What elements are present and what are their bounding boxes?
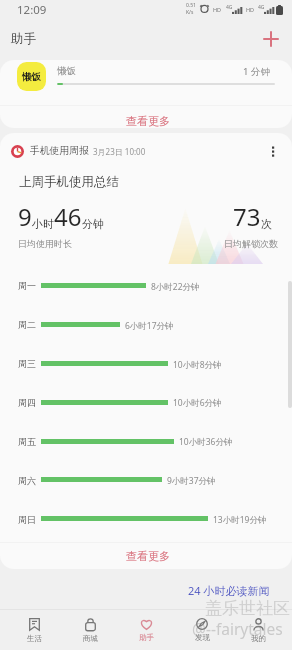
staticText: 12:09 — [17, 2, 47, 18]
staticText: 46 — [54, 200, 82, 233]
staticText: 周日 — [18, 514, 36, 525]
button[interactable]: 生活 — [6, 610, 62, 650]
staticText: 助手 — [139, 633, 154, 642]
staticText: 10小时8分钟 — [173, 359, 222, 371]
staticText: 10小时6分钟 — [173, 397, 222, 409]
button[interactable]: 助手 — [118, 610, 174, 650]
staticText: 助手 — [11, 31, 36, 47]
staticText: 懒饭 — [57, 65, 76, 77]
staticText: 查看更多 — [126, 549, 170, 563]
staticText: 我的 — [251, 634, 266, 643]
staticText: 4G — [226, 4, 233, 11]
staticText: 商城 — [83, 634, 98, 643]
staticText: 4G — [258, 4, 265, 11]
staticText: 小时 — [32, 217, 54, 231]
staticText: 手机使用周报 — [30, 145, 89, 157]
staticText: 次 — [261, 217, 272, 231]
button[interactable]: 商城 — [62, 610, 118, 650]
staticText: 24 小时必读新闻 — [188, 583, 270, 598]
staticText: 周四 — [18, 397, 36, 408]
staticText: 懒饭 — [22, 71, 41, 83]
staticText: HD — [213, 6, 222, 13]
staticText: 73 — [233, 200, 261, 233]
staticText: @--fairytales — [192, 618, 283, 639]
button[interactable]: 我的 — [230, 610, 286, 650]
button[interactable]: 查看更多 — [0, 105, 292, 128]
staticText: 10小时36分钟 — [179, 436, 233, 448]
staticText: 日均使用时长 — [18, 238, 72, 249]
staticText: 周二 — [18, 319, 36, 330]
staticText: 查看更多 — [126, 114, 170, 128]
button[interactable]: Add — [259, 27, 283, 51]
staticText: 发现 — [195, 633, 210, 642]
staticText: HD — [246, 6, 255, 13]
button[interactable]: 发现 — [174, 610, 230, 650]
staticText: 1 分钟 — [243, 65, 270, 78]
staticText: 9小时37分钟 — [167, 475, 216, 487]
staticText: 生活 — [27, 634, 42, 643]
staticText: 周三 — [18, 358, 36, 369]
staticText: K/s — [186, 9, 194, 16]
staticText: 0.51 — [186, 2, 196, 9]
staticText: 上周手机使用总结 — [19, 174, 119, 190]
staticText: 13小时19分钟 — [213, 514, 267, 526]
staticText: 周一 — [18, 280, 36, 291]
staticText: 周五 — [18, 436, 36, 447]
staticText: 盖乐世社区 — [205, 598, 290, 619]
button[interactable]: 懒饭 — [0, 60, 292, 104]
staticText: 8小时22分钟 — [151, 281, 200, 293]
staticText: 周六 — [18, 475, 36, 486]
button[interactable]: 查看更多 — [0, 543, 292, 569]
button[interactable]: More options — [262, 141, 284, 161]
staticText: 分钟 — [82, 217, 104, 231]
staticText: 9 — [18, 200, 32, 233]
staticText: 日均解锁次数 — [224, 238, 278, 249]
staticText: 6小时17分钟 — [125, 320, 174, 332]
staticText: 3月23日 10:00 — [93, 146, 146, 157]
